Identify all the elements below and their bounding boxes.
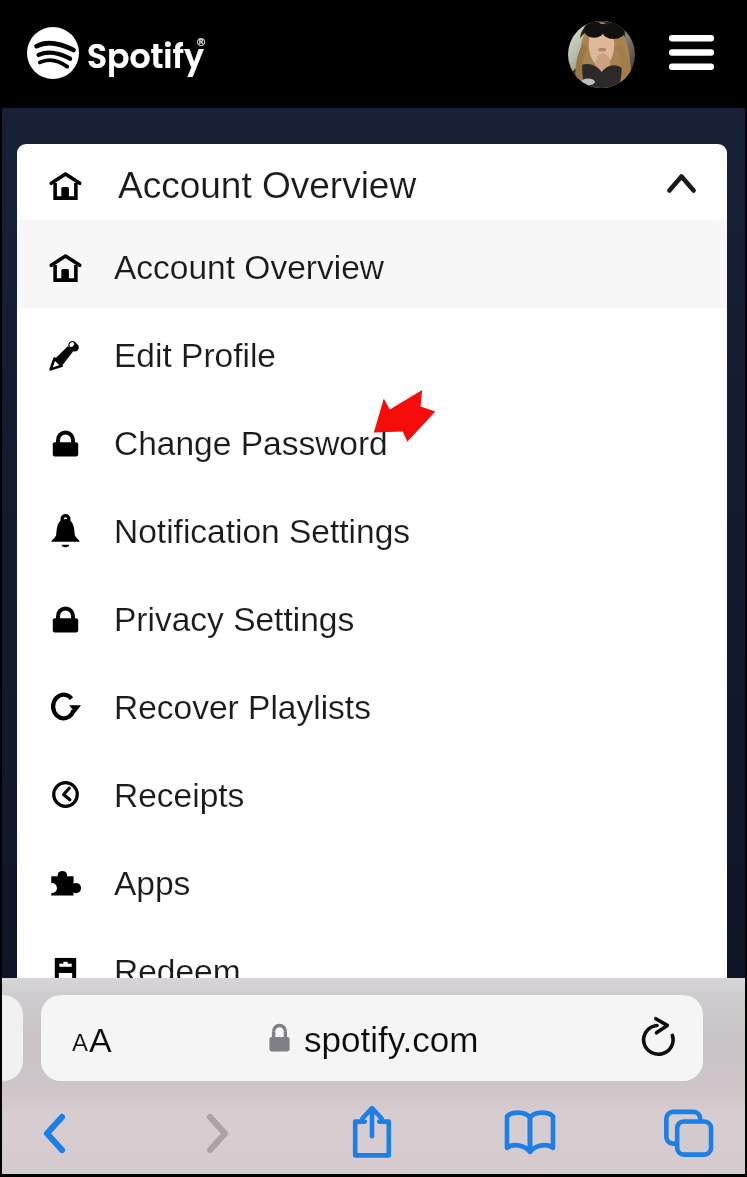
button[interactable]: Apps	[17, 836, 727, 924]
button[interactable]: Notification Settings	[17, 484, 727, 572]
button[interactable]: Profile	[568, 21, 635, 88]
button[interactable]: Menu	[655, 24, 727, 80]
staticText: Notification Settings	[114, 513, 411, 550]
button[interactable]: Back	[9, 1094, 99, 1172]
staticText: Spotify	[87, 33, 204, 79]
staticText: Redeem	[114, 953, 241, 990]
staticText: Receipts	[114, 777, 245, 814]
button[interactable]: Change Password	[17, 396, 727, 484]
staticText: Account Overview	[114, 249, 384, 286]
button[interactable]: Receipts	[17, 748, 727, 836]
staticText: A	[72, 1029, 89, 1056]
button[interactable]: Forward	[172, 1094, 262, 1172]
button[interactable]: Bookmarks	[485, 1093, 575, 1171]
staticText: Change Password	[114, 425, 388, 462]
button[interactable]: Privacy Settings	[17, 572, 727, 660]
staticText: ®	[197, 36, 206, 48]
staticText: Recover Playlists	[114, 689, 371, 726]
staticText: Privacy Settings	[114, 601, 355, 638]
button[interactable]: Account Overview	[17, 144, 727, 220]
button[interactable]: Account Overview	[17, 220, 727, 308]
staticText: Apps	[114, 865, 191, 902]
staticText: A	[89, 1021, 112, 1059]
staticText: Edit Profile	[114, 337, 276, 374]
button[interactable]: Tabs	[642, 1094, 732, 1172]
button[interactable]: A	[41, 995, 703, 1081]
staticText: spotify.com	[304, 1020, 479, 1059]
staticText: Account Overview	[118, 165, 417, 206]
button[interactable]: Edit Profile	[17, 308, 727, 396]
button[interactable]: Share	[327, 1093, 417, 1171]
button[interactable]: Recover Playlists	[17, 660, 727, 748]
button[interactable]: Redeem	[17, 924, 727, 1012]
